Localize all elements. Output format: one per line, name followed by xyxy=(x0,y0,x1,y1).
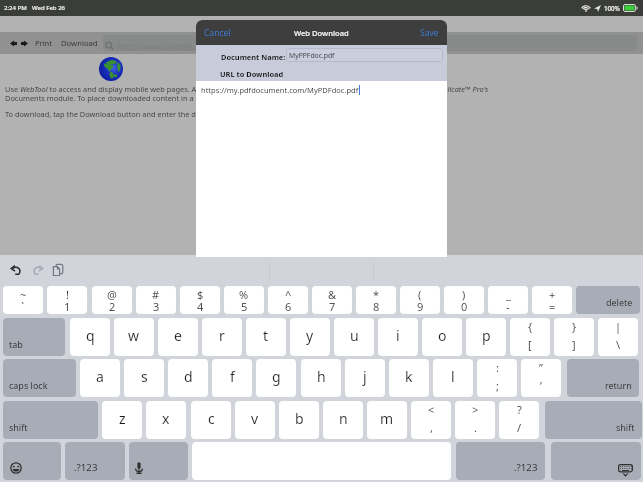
button[interactable]: c xyxy=(191,401,231,439)
button[interactable]: k xyxy=(389,359,429,397)
button[interactable]: < xyxy=(411,401,451,439)
staticText: { xyxy=(528,319,533,334)
button[interactable]: y xyxy=(290,318,330,356)
button[interactable]: Cancel xyxy=(199,23,236,43)
button[interactable]: tab xyxy=(3,318,65,356)
button[interactable]: http://www.google.com xyxy=(103,35,637,51)
button[interactable]: s xyxy=(124,359,164,397)
button[interactable]: ” xyxy=(521,359,561,397)
staticText: = xyxy=(549,299,556,314)
button[interactable]: shift xyxy=(3,401,98,439)
staticText: tab xyxy=(9,338,23,350)
staticText: Document Name: xyxy=(221,52,286,62)
staticText: 8 xyxy=(373,299,380,314)
button[interactable]: Save xyxy=(415,23,444,43)
button[interactable]: delete xyxy=(576,286,640,314)
button[interactable]: u xyxy=(334,318,374,356)
button[interactable]: j xyxy=(345,359,385,397)
staticText: shift xyxy=(9,421,28,433)
button[interactable]: q xyxy=(70,318,110,356)
staticText: URL to Download xyxy=(220,69,284,79)
button[interactable]: ) xyxy=(444,286,484,314)
button[interactable]: shift xyxy=(545,401,642,439)
button[interactable]: Redo xyxy=(33,265,44,276)
button[interactable]: ! xyxy=(47,286,87,314)
button[interactable]: caps lock xyxy=(3,359,76,397)
staticText: ~ xyxy=(20,287,27,302)
staticText: * xyxy=(373,287,380,302)
staticText: % xyxy=(239,287,249,302)
button[interactable]: MyPPFdoc.pdf xyxy=(286,48,443,62)
button[interactable]: m xyxy=(367,401,407,439)
button[interactable]: ^ xyxy=(268,286,308,314)
button[interactable]: Emoji xyxy=(3,442,61,480)
button[interactable]: & xyxy=(312,286,352,314)
button[interactable]: .?123 xyxy=(456,442,545,480)
button[interactable]: h xyxy=(301,359,341,397)
staticText: h xyxy=(317,367,326,386)
button[interactable]: Back xyxy=(6,35,21,51)
button[interactable]: Undo xyxy=(11,265,22,276)
button[interactable]: r xyxy=(202,318,242,356)
staticText: i xyxy=(396,326,400,345)
button[interactable]: $ xyxy=(180,286,220,314)
staticText: Web Download xyxy=(294,28,349,38)
staticText: Print xyxy=(35,38,52,48)
button[interactable]: * xyxy=(356,286,396,314)
button[interactable]: a xyxy=(80,359,120,397)
button[interactable]: Print xyxy=(32,34,54,52)
button[interactable]: } xyxy=(554,318,594,356)
button[interactable]: Dictate xyxy=(129,442,188,480)
staticText: v xyxy=(251,409,259,428)
button[interactable]: z xyxy=(102,401,142,439)
staticText: _ xyxy=(506,287,511,302)
staticText: 7 xyxy=(329,299,336,314)
staticText: q xyxy=(86,326,95,345)
button[interactable]: Download xyxy=(58,34,100,52)
staticText: < xyxy=(428,402,435,417)
button[interactable]: v xyxy=(235,401,275,439)
button[interactable]: f xyxy=(212,359,252,397)
staticText: delete xyxy=(606,296,633,308)
staticText: caps lock xyxy=(9,379,48,391)
button[interactable]: + xyxy=(532,286,572,314)
button[interactable]: ~ xyxy=(3,286,43,314)
staticText: shift xyxy=(616,421,635,433)
button[interactable]: ( xyxy=(400,286,440,314)
staticText: ! xyxy=(66,287,69,302)
button[interactable]: x xyxy=(146,401,186,439)
button[interactable]: g xyxy=(256,359,296,397)
staticText: 1 xyxy=(64,299,71,314)
staticText: https://my.pdfdocument.com/MyPDFdoc.pdf xyxy=(201,85,359,95)
button[interactable]: % xyxy=(224,286,264,314)
button[interactable]: e xyxy=(158,318,198,356)
button[interactable]: p xyxy=(466,318,506,356)
button[interactable]: n xyxy=(323,401,363,439)
button[interactable]: # xyxy=(136,286,176,314)
button[interactable]: t xyxy=(246,318,286,356)
button[interactable]: d xyxy=(168,359,208,397)
button[interactable]: .?123 xyxy=(65,442,125,480)
button[interactable]: return xyxy=(567,359,639,397)
button[interactable]: Forward xyxy=(17,35,32,51)
button[interactable]: Paste xyxy=(53,264,65,276)
staticText: g xyxy=(272,367,281,386)
button[interactable]: o xyxy=(422,318,462,356)
staticText: 0 xyxy=(461,299,468,314)
staticText: To download, tap the Download button and… xyxy=(5,109,342,119)
button[interactable]: ? xyxy=(499,401,539,439)
button[interactable]: | xyxy=(598,318,638,356)
button[interactable]: > xyxy=(455,401,495,439)
button[interactable]: l xyxy=(433,359,473,397)
staticText: ) xyxy=(462,287,466,302)
button[interactable]: : xyxy=(477,359,517,397)
button[interactable]: b xyxy=(279,401,319,439)
button[interactable]: i xyxy=(378,318,418,356)
button[interactable]: { xyxy=(510,318,550,356)
button[interactable]: w xyxy=(114,318,154,356)
button[interactable]: Hide keyboard xyxy=(551,442,641,480)
staticText: [ xyxy=(528,337,532,352)
button[interactable]: @ xyxy=(92,286,132,314)
button[interactable]: _ xyxy=(488,286,528,314)
